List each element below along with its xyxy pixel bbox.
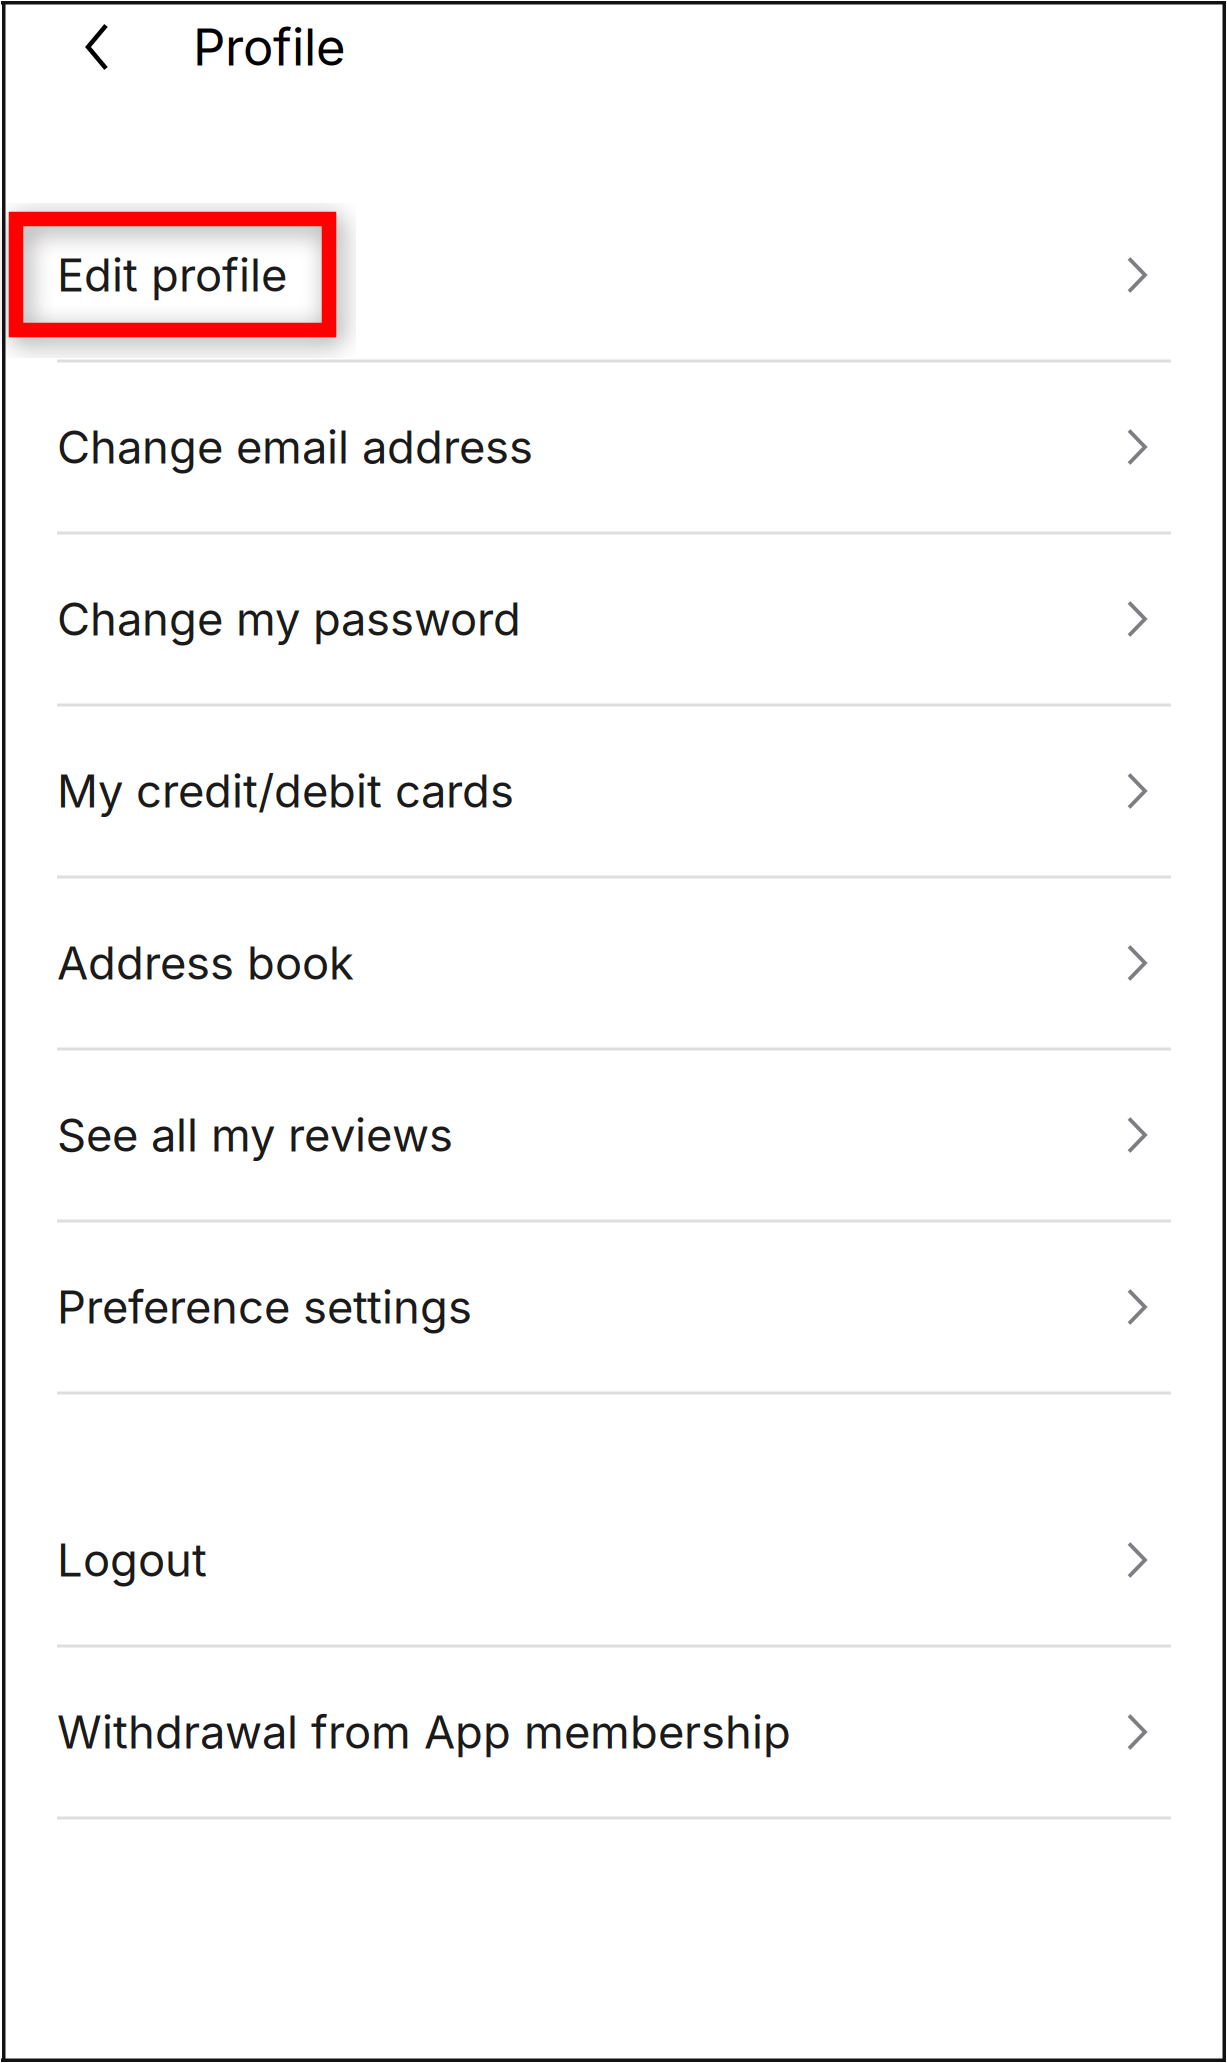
- staticText: Logout: [57, 1533, 207, 1587]
- button[interactable]: Back: [48, 0, 146, 94]
- button[interactable]: My credit/debit cards: [0, 706, 1227, 875]
- staticText: My credit/debit cards: [57, 764, 514, 818]
- staticText: Address book: [57, 936, 354, 990]
- button[interactable]: Preference settings: [0, 1222, 1227, 1391]
- staticText: Profile: [193, 16, 346, 78]
- staticText: Change my password: [57, 592, 521, 646]
- button[interactable]: Edit profile: [0, 190, 1227, 359]
- button[interactable]: Change email address: [0, 362, 1227, 531]
- staticText: See all my reviews: [57, 1108, 453, 1162]
- button[interactable]: Withdrawal from App membership: [0, 1647, 1227, 1816]
- button[interactable]: Change my password: [0, 534, 1227, 703]
- button[interactable]: See all my reviews: [0, 1050, 1227, 1219]
- button[interactable]: Address book: [0, 878, 1227, 1047]
- staticText: Withdrawal from App membership: [57, 1705, 791, 1759]
- staticText: Preference settings: [57, 1280, 472, 1334]
- staticText: Change email address: [57, 420, 533, 474]
- staticText: Edit profile: [57, 248, 287, 302]
- button[interactable]: Logout: [0, 1475, 1227, 1644]
